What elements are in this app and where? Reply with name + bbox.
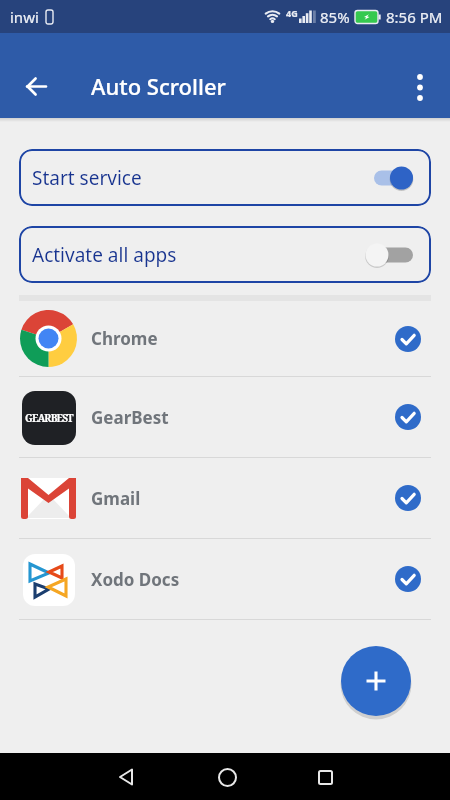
staticText: 4G bbox=[286, 7, 298, 19]
staticText: inwi bbox=[10, 7, 39, 27]
staticText: 8:56 PM bbox=[386, 7, 443, 27]
button[interactable] bbox=[24, 74, 48, 98]
staticText: GEARBEST bbox=[25, 411, 73, 425]
button[interactable]: Chrome bbox=[0, 301, 450, 376]
button[interactable]: Xodo Docs bbox=[0, 539, 450, 619]
staticText: Gmail bbox=[91, 487, 141, 510]
button[interactable]: GEARBEST bbox=[0, 377, 450, 457]
button[interactable]: Activate all apps bbox=[19, 226, 431, 283]
button[interactable]: Start service bbox=[19, 149, 431, 206]
staticText: GearBest bbox=[91, 406, 169, 429]
button[interactable] bbox=[305, 757, 345, 797]
button[interactable]: Gmail bbox=[0, 458, 450, 538]
button[interactable] bbox=[207, 757, 247, 797]
staticText: Xodo Docs bbox=[91, 568, 180, 591]
staticText: 85% bbox=[320, 7, 350, 27]
button[interactable] bbox=[341, 646, 411, 716]
staticText: Start service bbox=[32, 165, 142, 191]
button[interactable] bbox=[106, 757, 146, 797]
staticText: Auto Scroller bbox=[91, 71, 226, 101]
staticText: Chrome bbox=[91, 327, 158, 350]
button[interactable] bbox=[408, 74, 432, 98]
staticText: Activate all apps bbox=[32, 242, 177, 268]
